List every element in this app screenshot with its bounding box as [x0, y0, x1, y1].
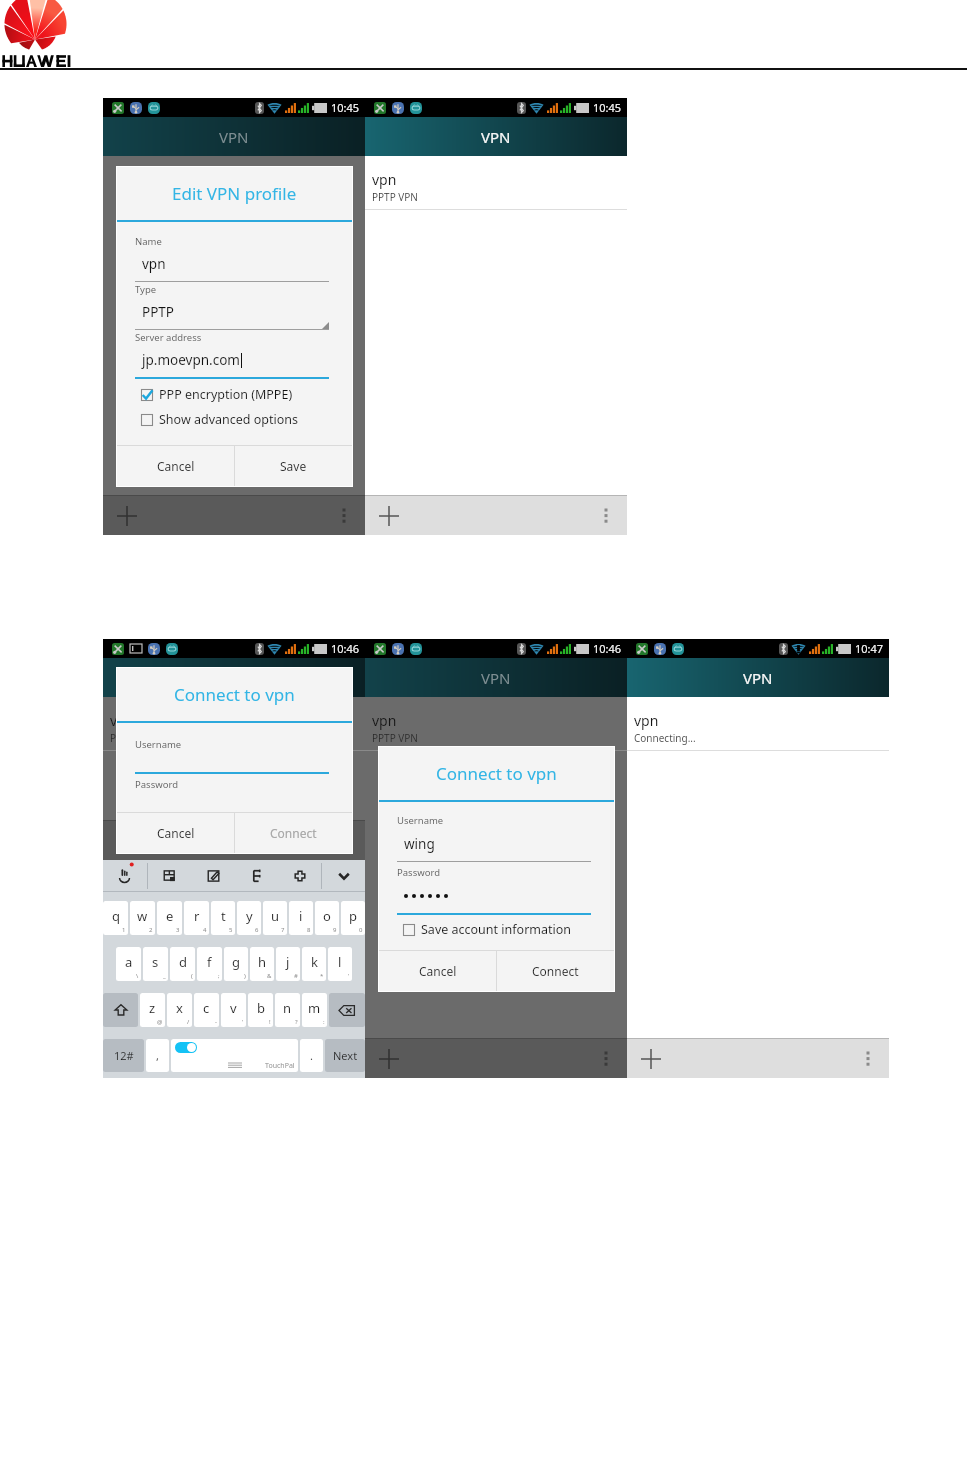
button[interactable]: More options: [597, 507, 615, 525]
button[interactable]: o: [315, 901, 339, 935]
staticText: vpn: [634, 711, 659, 730]
button[interactable]: More options: [597, 1050, 615, 1068]
staticText: Edit VPN profile: [172, 182, 297, 205]
staticText: (: [191, 972, 193, 980]
button[interactable]: Hide keyboard: [322, 860, 365, 891]
button[interactable]: Save account information: [403, 917, 614, 942]
button[interactable]: Add: [278, 860, 321, 891]
button[interactable]: f: [197, 947, 222, 981]
staticText: k: [311, 953, 318, 971]
staticText: s: [152, 953, 159, 971]
staticText: Password: [397, 866, 440, 879]
staticText: VPN: [481, 668, 511, 688]
button[interactable]: u: [263, 901, 287, 935]
staticText: 10:47: [855, 641, 884, 656]
staticText: Connect to vpn: [436, 762, 557, 785]
staticText: ;: [218, 972, 220, 980]
button[interactable]: b: [248, 993, 273, 1027]
staticText: o: [323, 907, 331, 925]
button[interactable]: x: [167, 993, 192, 1027]
button[interactable]: e: [157, 901, 182, 935]
staticText: 12#: [114, 1048, 134, 1063]
button[interactable]: g: [224, 947, 248, 981]
button[interactable]: Cancel: [379, 951, 496, 991]
button[interactable]: More options: [335, 507, 353, 525]
staticText: Connect: [532, 963, 579, 979]
button[interactable]: More options: [859, 1050, 877, 1068]
button[interactable]: Shift: [103, 993, 138, 1027]
staticText: Save account information: [421, 921, 572, 938]
staticText: 8: [307, 926, 311, 934]
staticText: j: [286, 953, 290, 971]
staticText: 10:45: [331, 100, 360, 115]
staticText: Cancel: [419, 963, 457, 979]
staticText: jp.moevpn.com: [142, 351, 240, 369]
button[interactable]: Handwriting: [103, 860, 147, 891]
button[interactable]: n: [275, 993, 300, 1027]
button[interactable]: Edit: [192, 860, 235, 891]
button[interactable]: m: [302, 993, 327, 1027]
staticText: vpn: [372, 711, 397, 730]
button[interactable]: Language: [148, 860, 192, 891]
button[interactable]: q: [103, 901, 128, 935]
button[interactable]: y: [237, 901, 261, 935]
button[interactable]: z: [140, 993, 165, 1027]
button[interactable]: Connect: [497, 951, 614, 991]
staticText: @: [157, 1018, 163, 1026]
staticText: x: [176, 999, 183, 1017]
button[interactable]: i: [289, 901, 313, 935]
staticText: Cancel: [157, 825, 195, 841]
button[interactable]: r: [184, 901, 209, 935]
button[interactable]: a: [116, 947, 141, 981]
button[interactable]: PPP encryption (MPPE): [141, 382, 352, 407]
staticText: q: [112, 907, 120, 925]
staticText: ?: [295, 1018, 298, 1026]
button[interactable]: s: [143, 947, 168, 981]
button[interactable]: v: [221, 993, 246, 1027]
staticText: h: [258, 953, 267, 971]
staticText: 10:46: [593, 641, 622, 656]
button[interactable]: Cancel: [117, 813, 234, 853]
button[interactable]: Cancel: [117, 446, 234, 486]
staticText: Name: [135, 235, 162, 248]
staticText: 7: [281, 926, 285, 934]
staticText: \: [136, 972, 139, 980]
button[interactable]: Space: [171, 1039, 298, 1072]
button[interactable]: Layout: [235, 860, 278, 891]
staticText: *: [320, 972, 324, 980]
button[interactable]: Add VPN profile: [378, 1048, 400, 1070]
staticText: g: [232, 953, 240, 971]
button[interactable]: Add VPN profile: [116, 505, 138, 527]
staticText: 2: [149, 926, 153, 934]
button[interactable]: Next: [325, 1039, 365, 1072]
staticText: ': [242, 1018, 244, 1026]
button[interactable]: Save: [235, 446, 352, 486]
button[interactable]: l: [328, 947, 352, 981]
button[interactable]: j: [276, 947, 300, 981]
button[interactable]: t: [211, 901, 235, 935]
button[interactable]: vpn: [627, 697, 889, 750]
staticText: ,: [156, 1048, 159, 1063]
button[interactable]: .: [300, 1039, 323, 1072]
button[interactable]: h: [250, 947, 274, 981]
staticText: vpn: [372, 170, 397, 189]
staticText: v: [230, 999, 237, 1017]
staticText: /: [187, 1018, 190, 1026]
button[interactable]: ,: [146, 1039, 169, 1072]
button[interactable]: Add VPN profile: [378, 505, 400, 527]
button[interactable]: c: [194, 993, 219, 1027]
button[interactable]: Connect: [235, 813, 352, 853]
staticText: VPN: [219, 127, 249, 147]
button[interactable]: w: [130, 901, 155, 935]
button[interactable]: vpn: [365, 156, 627, 209]
button[interactable]: Add VPN profile: [640, 1048, 662, 1070]
button[interactable]: Show advanced options: [141, 407, 352, 432]
button[interactable]: 12#: [103, 1039, 144, 1072]
button[interactable]: d: [170, 947, 195, 981]
button[interactable]: p: [341, 901, 365, 935]
button[interactable]: Backspace: [329, 993, 365, 1027]
button[interactable]: k: [302, 947, 326, 981]
staticText: e: [166, 907, 174, 925]
